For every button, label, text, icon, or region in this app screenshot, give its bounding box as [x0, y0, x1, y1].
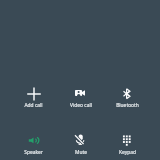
button[interactable]: Keypad [104, 134, 151, 156]
button[interactable]: Speaker [10, 134, 57, 156]
staticText: Mute [75, 149, 87, 156]
button[interactable]: Video call [57, 87, 104, 109]
staticText: Bluetooth [116, 102, 139, 109]
staticText: Speaker [24, 149, 43, 156]
staticText: Video call [70, 102, 92, 109]
staticText: Keypad [119, 149, 136, 156]
button[interactable]: Mute [57, 134, 104, 156]
button[interactable]: Bluetooth [104, 87, 151, 109]
staticText: Add call [24, 102, 43, 109]
button[interactable]: Add call [10, 87, 57, 109]
